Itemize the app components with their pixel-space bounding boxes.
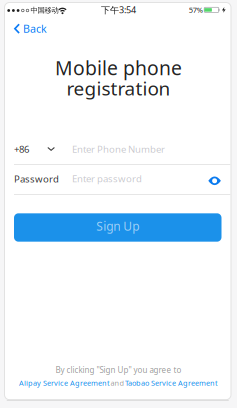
button[interactable]: Taobao Service Agreement bbox=[125, 378, 218, 388]
staticText: Password bbox=[14, 172, 59, 185]
staticText: By clicking "Sign Up" you agree to bbox=[55, 365, 181, 375]
staticText: Enter Phone Number bbox=[72, 142, 165, 156]
button[interactable]: Country code +86 bbox=[14, 141, 55, 157]
staticText: 下午3:54 bbox=[101, 4, 136, 16]
staticText: Taobao Service Agreement bbox=[125, 378, 218, 388]
staticText: and bbox=[110, 378, 124, 388]
staticText: Sign Up bbox=[96, 218, 139, 234]
staticText: registration bbox=[66, 75, 170, 101]
button[interactable]: Sign Up bbox=[14, 213, 221, 242]
button[interactable]: Alipay Service Agreement bbox=[19, 378, 110, 388]
staticText: Mobile phone bbox=[55, 55, 182, 81]
staticText: +86 bbox=[14, 142, 29, 156]
staticText: Enter password bbox=[72, 172, 142, 185]
staticText: 57% bbox=[189, 5, 203, 15]
staticText: Back bbox=[23, 21, 47, 36]
staticText: Alipay Service Agreement bbox=[19, 378, 110, 388]
staticText: 中国移动 bbox=[30, 6, 58, 15]
button[interactable]: Back bbox=[14, 22, 60, 36]
button[interactable]: Show password bbox=[206, 174, 223, 188]
